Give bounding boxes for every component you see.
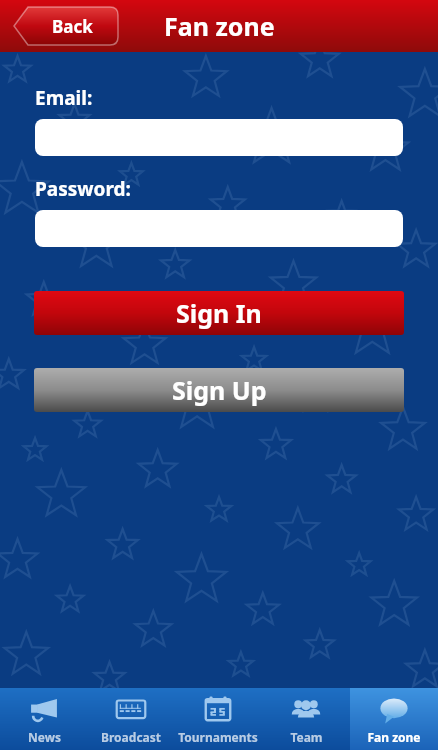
staticText: Broadcast bbox=[101, 729, 161, 745]
button[interactable] bbox=[35, 119, 403, 156]
button[interactable]: Fan zone bbox=[350, 688, 438, 750]
staticText: Sign In bbox=[176, 296, 262, 330]
staticText: Back bbox=[52, 15, 93, 38]
button[interactable]: Broadcast bbox=[87, 688, 174, 750]
staticText: Fan zone bbox=[367, 729, 421, 745]
staticText: Sign Up bbox=[172, 373, 267, 407]
button[interactable]: Tournaments bbox=[174, 688, 262, 750]
staticText: Email: bbox=[35, 85, 93, 111]
staticText: Fan zone bbox=[164, 9, 275, 43]
button[interactable] bbox=[35, 210, 403, 247]
button[interactable]: Sign Up bbox=[34, 368, 404, 412]
staticText: Team bbox=[290, 729, 323, 745]
button[interactable]: Back bbox=[14, 7, 118, 45]
button[interactable]: Team bbox=[262, 688, 350, 750]
button[interactable]: Sign In bbox=[34, 291, 404, 335]
staticText: Tournaments bbox=[178, 729, 258, 745]
button[interactable]: News bbox=[0, 688, 87, 750]
staticText: Password: bbox=[35, 176, 131, 202]
staticText: News bbox=[28, 729, 61, 745]
